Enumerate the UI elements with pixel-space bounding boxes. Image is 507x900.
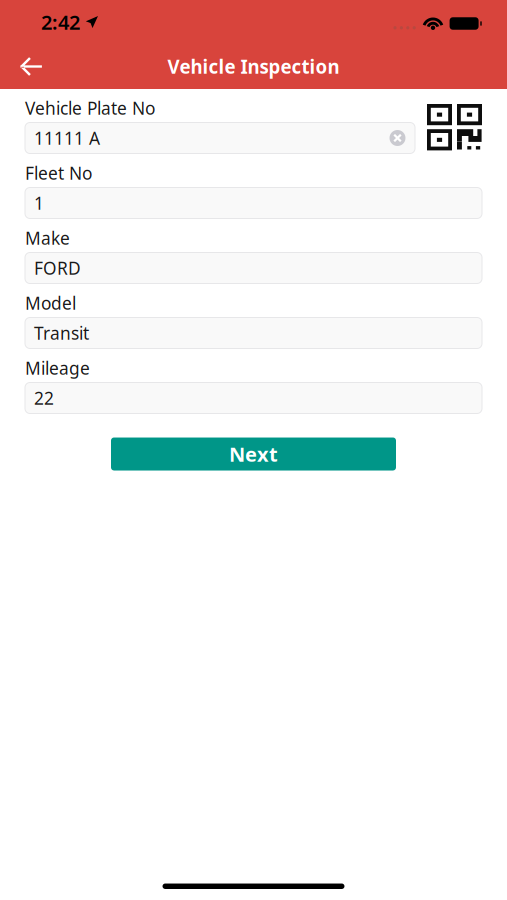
- staticText: Next: [229, 441, 278, 467]
- staticText: 1: [34, 191, 44, 214]
- staticText: Vehicle Plate No: [25, 96, 155, 119]
- staticText: 2:42: [41, 9, 80, 35]
- staticText: Make: [25, 226, 70, 249]
- staticText: Model: [25, 291, 76, 314]
- staticText: 11111 A: [34, 126, 100, 149]
- staticText: Transit: [34, 321, 89, 344]
- button[interactable]: Scan QR code: [426, 98, 482, 150]
- staticText: Mileage: [25, 356, 90, 379]
- button[interactable]: Clear text: [386, 122, 408, 153]
- staticText: Fleet No: [25, 161, 92, 184]
- staticText: 22: [34, 386, 54, 409]
- staticText: FORD: [34, 256, 81, 279]
- staticText: Vehicle Inspection: [167, 54, 339, 79]
- button[interactable]: Next: [111, 437, 396, 470]
- button[interactable]: Back: [0, 44, 52, 89]
